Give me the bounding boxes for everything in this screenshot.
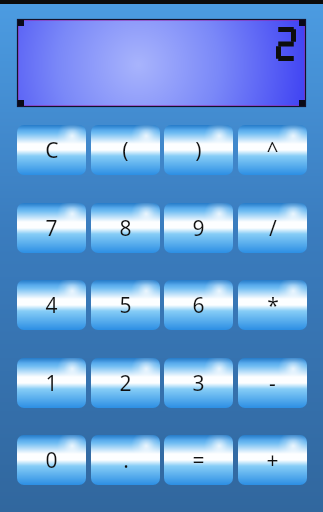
button[interactable]: 0	[17, 435, 86, 485]
staticText: =	[192, 446, 205, 475]
staticText: +	[266, 446, 279, 475]
button[interactable]: 1	[17, 358, 86, 408]
button[interactable]: 9	[164, 203, 233, 253]
staticText: 6	[192, 291, 205, 320]
button[interactable]: Divide	[238, 203, 307, 253]
button[interactable]: 2	[91, 358, 160, 408]
button[interactable]: Power	[238, 125, 307, 175]
staticText: 2	[119, 369, 132, 398]
staticText: C	[45, 136, 59, 165]
button[interactable]: Close parenthesis	[164, 125, 233, 175]
staticText: 0	[45, 446, 58, 475]
staticText: 5	[119, 291, 132, 320]
button[interactable]: Clear	[17, 125, 86, 175]
staticText: /	[269, 214, 277, 243]
staticText: 4	[45, 291, 58, 320]
button[interactable]: Open parenthesis	[91, 125, 160, 175]
button[interactable]: 3	[164, 358, 233, 408]
staticText: 9	[192, 214, 205, 243]
button[interactable]: Minus	[238, 358, 307, 408]
staticText: (	[122, 136, 129, 165]
staticText: 7	[45, 214, 58, 243]
button[interactable]: Equals	[164, 435, 233, 485]
button[interactable]: 5	[91, 280, 160, 330]
button[interactable]: Plus	[238, 435, 307, 485]
staticText: -	[269, 369, 276, 398]
staticText: 3	[192, 369, 205, 398]
button[interactable]: 7	[17, 203, 86, 253]
button[interactable]: 4	[17, 280, 86, 330]
button[interactable]: 6	[164, 280, 233, 330]
staticText: ^	[266, 136, 279, 165]
button[interactable]: Multiply	[238, 280, 307, 330]
staticText: )	[195, 136, 202, 165]
button[interactable]: 8	[91, 203, 160, 253]
staticText: *	[267, 291, 279, 320]
button[interactable]: Decimal point	[91, 435, 160, 485]
staticText: 8	[119, 214, 132, 243]
staticText: 1	[45, 369, 58, 398]
staticText: .	[123, 446, 129, 475]
